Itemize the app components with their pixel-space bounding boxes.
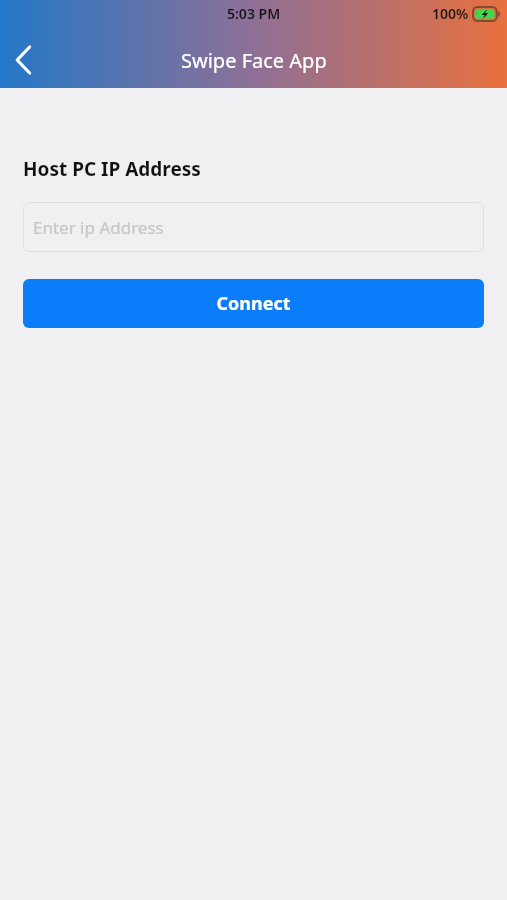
staticText: Host PC IP Address xyxy=(23,156,201,182)
staticText: Enter ip Address xyxy=(33,216,164,239)
button[interactable]: Connect xyxy=(23,279,484,328)
staticText: Swipe Face App xyxy=(181,47,327,74)
staticText: 5:03 PM xyxy=(227,4,281,23)
button[interactable]: Enter ip Address xyxy=(23,202,484,252)
staticText: 100% xyxy=(432,4,469,23)
staticText: Connect xyxy=(216,291,291,316)
button[interactable]: Back xyxy=(2,38,46,82)
